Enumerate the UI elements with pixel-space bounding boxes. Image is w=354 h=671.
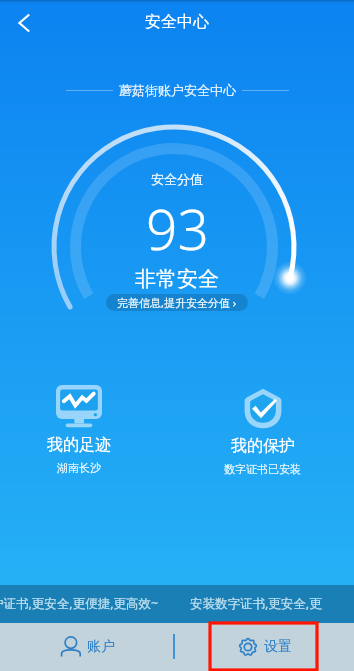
- staticText: 安全中心: [145, 12, 209, 32]
- staticText: 户证书,更安全,更便捷,更高效~: [0, 595, 159, 612]
- button[interactable]: 完善信息,提升安全分值 ›: [106, 294, 248, 311]
- staticText: 数字证书已安装: [224, 462, 301, 476]
- staticText: 非常安全: [135, 266, 219, 292]
- button[interactable]: 我的保护: [202, 388, 323, 463]
- staticText: 完善信息,提升安全分值 ›: [117, 295, 237, 310]
- staticText: 我的足迹: [47, 435, 111, 455]
- button[interactable]: 设置: [177, 623, 354, 671]
- button[interactable]: 我的足迹: [19, 385, 139, 462]
- staticText: 蘑菇街账户安全中心: [119, 82, 236, 98]
- button[interactable]: 账户: [0, 623, 177, 671]
- button[interactable]: Back: [6, 5, 42, 41]
- staticText: 安全分值: [151, 171, 203, 187]
- staticText: 设置: [264, 638, 292, 656]
- button[interactable]: 户证书,更安全,更便捷,更高效~: [0, 585, 354, 623]
- staticText: 我的保护: [231, 436, 295, 456]
- staticText: 安装数字证书,更安全,更: [190, 595, 322, 612]
- staticText: 湖南长沙: [57, 461, 101, 475]
- staticText: 账户: [87, 638, 115, 656]
- staticText: 93: [146, 191, 209, 266]
